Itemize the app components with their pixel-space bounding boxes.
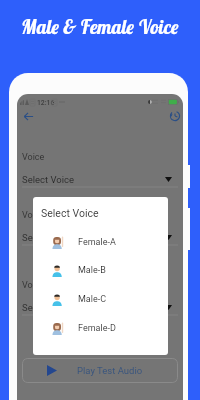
button[interactable]: Select Voice — [22, 229, 178, 245]
button[interactable]: Female-D — [33, 314, 168, 342]
button[interactable]: Play Test Audio — [22, 358, 178, 383]
staticText: Select Voice — [22, 302, 75, 313]
staticText: Select Voice — [22, 174, 75, 185]
staticText: Female-A — [78, 237, 116, 248]
staticText: Select Voice — [41, 207, 99, 219]
staticText: Play Test Audio — [77, 365, 143, 376]
staticText: 12:16 — [37, 99, 55, 107]
button[interactable]: Female-A — [33, 228, 168, 256]
button[interactable]: History — [167, 108, 183, 124]
staticText: Female-D — [78, 323, 116, 334]
staticText: Male-C — [78, 294, 107, 305]
staticText: Select Voice — [22, 232, 75, 243]
button[interactable]: Male-C — [33, 285, 168, 313]
button[interactable]: Back — [20, 108, 36, 124]
staticText: Male-B — [78, 265, 106, 276]
staticText: Voice — [22, 152, 45, 163]
staticText: Voice — [22, 280, 45, 291]
staticText: Voice — [22, 210, 45, 221]
button[interactable]: Select Voice — [22, 171, 178, 187]
button[interactable]: Male-B — [33, 256, 168, 284]
staticText: Male & Female Voice — [0, 15, 200, 39]
button[interactable]: Select Voice — [22, 299, 178, 315]
